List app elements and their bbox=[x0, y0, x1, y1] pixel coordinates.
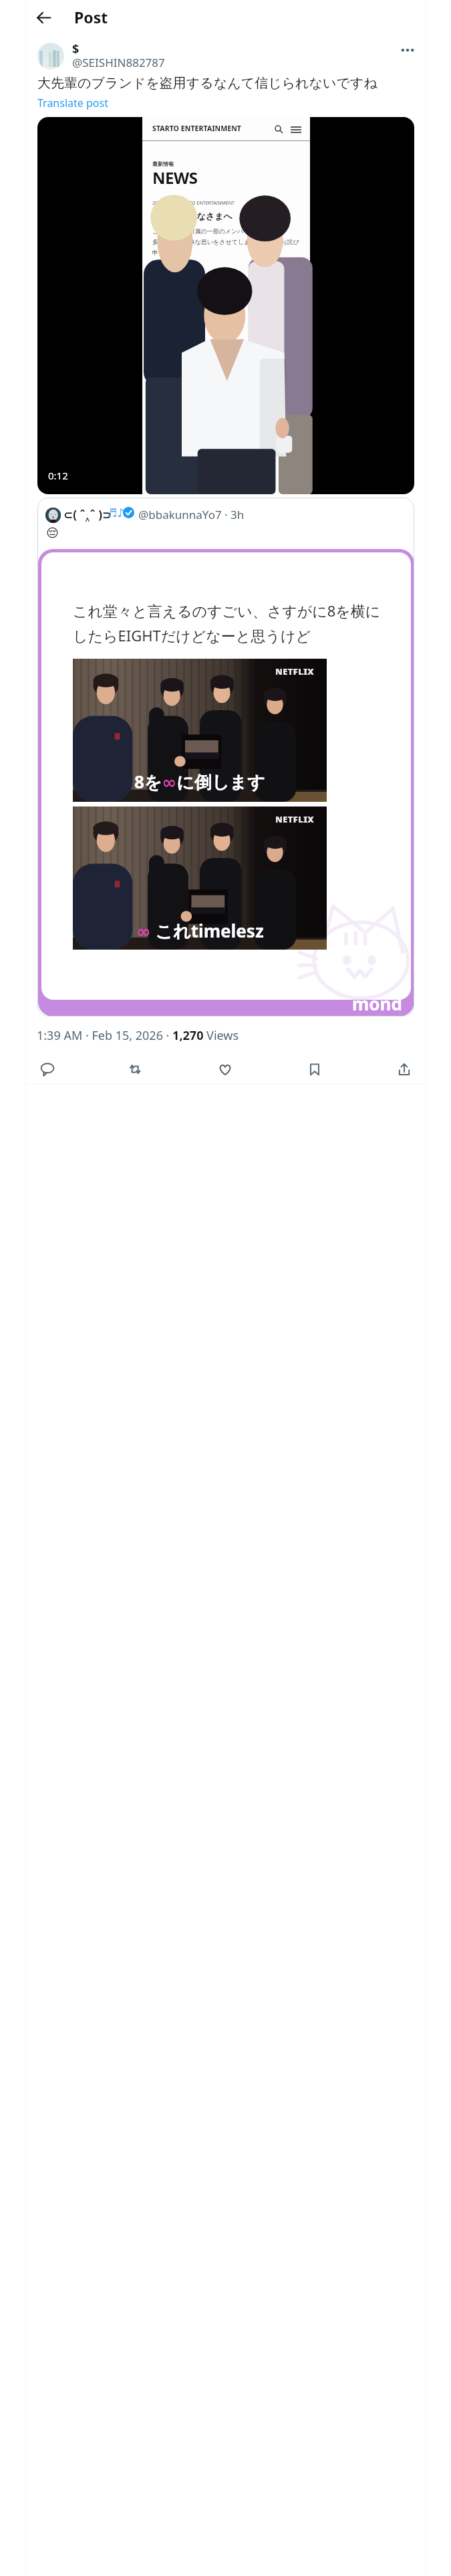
staticText: この度、弊社所属の一部のメンバーにより、 多くの方に不快な思いをさせてしまったこ… bbox=[152, 227, 299, 257]
button[interactable]: More options bbox=[397, 39, 418, 61]
staticText: @bbakunnaYo7 · 3h bbox=[138, 507, 245, 522]
staticText: STARTO ENTERTAINMENT bbox=[152, 124, 241, 133]
staticText: ♬♪ bbox=[107, 506, 125, 520]
staticText: ⊂( ˆ‸ˆ )⊃ bbox=[63, 507, 112, 522]
staticText: NETFLIX bbox=[275, 813, 315, 825]
staticText: $ bbox=[72, 41, 80, 58]
staticText: ファンのみなさまへ bbox=[152, 211, 233, 221]
staticText: 最新情報 bbox=[152, 160, 174, 167]
button[interactable]: Play video bbox=[37, 117, 414, 494]
button[interactable]: ⊂( ˆ‸ˆ )⊃ bbox=[37, 498, 414, 1016]
staticText: 1:39 AM · Feb 15, 2026 · 1,270 Views bbox=[37, 1027, 239, 1044]
staticText: 😔 bbox=[46, 526, 59, 540]
staticText: 8を∞に倒します bbox=[134, 770, 265, 794]
button[interactable] bbox=[37, 43, 64, 70]
staticText: NETFLIX bbox=[275, 665, 315, 677]
staticText: 大先輩のブランドを盗用するなんて信じられないですね bbox=[37, 75, 378, 92]
button[interactable]: Translate post bbox=[37, 96, 108, 110]
staticText: @SEISHIN882787 bbox=[72, 55, 165, 70]
staticText: mond bbox=[352, 992, 402, 1015]
staticText: NEWS bbox=[152, 167, 198, 189]
button[interactable]: Bookmark bbox=[301, 1056, 328, 1083]
button[interactable]: Back bbox=[32, 6, 55, 29]
staticText: 0:12 bbox=[48, 469, 68, 482]
button[interactable]: Like bbox=[212, 1056, 239, 1083]
staticText: Post bbox=[74, 7, 108, 27]
staticText: 2025.10.25 STARTO ENTERTAINMENT bbox=[152, 200, 235, 207]
staticText: これ堂々と言えるのすごい、さすがに8を横に したらEIGHTだけどなーと思うけど bbox=[73, 601, 381, 646]
staticText: Translate post bbox=[37, 96, 108, 110]
staticText: ∞ これtimelesz bbox=[136, 919, 264, 943]
button[interactable]: Repost bbox=[122, 1056, 148, 1083]
button[interactable]: Reply bbox=[34, 1056, 61, 1083]
button[interactable]: Share bbox=[391, 1056, 418, 1083]
